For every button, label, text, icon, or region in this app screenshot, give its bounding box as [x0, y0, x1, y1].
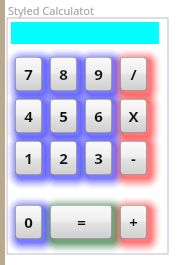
staticText: 6 [94, 106, 103, 126]
staticText: X [128, 106, 139, 126]
button[interactable]: 3 [85, 141, 118, 181]
button[interactable]: + [120, 205, 153, 245]
staticText: 2 [59, 148, 68, 168]
button[interactable]: X [120, 99, 153, 139]
staticText: 0 [24, 212, 33, 232]
button[interactable]: - [120, 141, 153, 181]
button[interactable]: 0 [15, 205, 48, 245]
staticText: + [129, 212, 138, 232]
staticText: 8 [59, 64, 68, 84]
staticText: 5 [59, 106, 68, 126]
button[interactable]: / [120, 57, 153, 97]
staticText: 1 [24, 148, 33, 168]
button[interactable]: 7 [15, 57, 48, 97]
button[interactable]: 9 [85, 57, 118, 97]
button[interactable]: = [50, 205, 118, 245]
staticText: 4 [24, 106, 33, 126]
staticText: / [130, 64, 137, 84]
staticText: 3 [94, 148, 103, 168]
staticText: - [131, 148, 136, 168]
button[interactable]: 5 [50, 99, 83, 139]
staticText: 9 [94, 64, 103, 84]
button[interactable]: 1 [15, 141, 48, 181]
button[interactable]: 8 [50, 57, 83, 97]
staticText: Styled Calculatot [8, 3, 94, 18]
button[interactable]: 2 [50, 141, 83, 181]
button[interactable]: 6 [85, 99, 118, 139]
button[interactable]: 4 [15, 99, 48, 139]
staticText: 7 [24, 64, 33, 84]
staticText: = [77, 212, 86, 232]
